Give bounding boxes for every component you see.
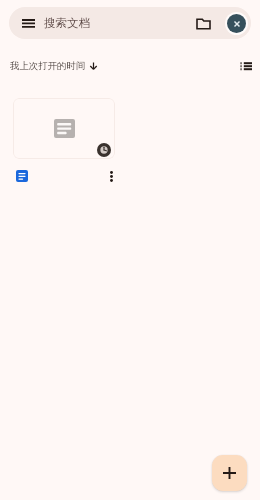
button[interactable]: More options bbox=[103, 168, 119, 184]
button[interactable] bbox=[13, 98, 115, 159]
button[interactable]: Create new document bbox=[212, 455, 247, 491]
button[interactable]: Account bbox=[227, 14, 246, 33]
staticText: 我上次打开的时间 bbox=[10, 60, 86, 72]
button[interactable]: Folders bbox=[195, 15, 211, 31]
button[interactable]: Switch to list view bbox=[238, 59, 254, 73]
button[interactable]: Menu bbox=[9, 7, 251, 39]
staticText: 搜索文档 bbox=[44, 16, 90, 30]
button[interactable]: Menu bbox=[20, 15, 36, 31]
button[interactable]: 我上次打开的时间 bbox=[10, 60, 97, 72]
button[interactable]: Google Docs file bbox=[16, 170, 28, 182]
